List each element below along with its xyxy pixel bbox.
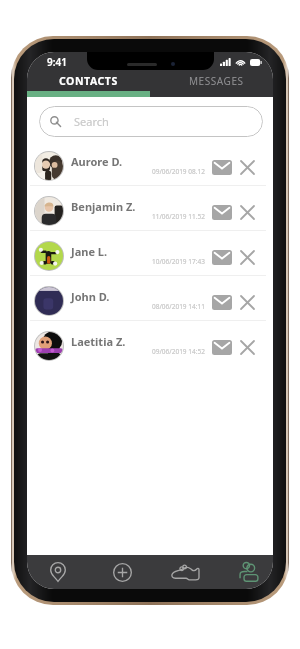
button[interactable]: CONTACTS: [27, 72, 150, 97]
button[interactable]: Activity: [167, 555, 203, 589]
staticText: 10/06/2019 17:43: [152, 257, 205, 266]
button[interactable]: Location: [40, 555, 76, 589]
staticText: Search: [74, 114, 109, 129]
button[interactable]: Laetitia Z.: [27, 321, 273, 366]
button[interactable]: Search: [39, 106, 263, 137]
button[interactable]: Benjamin Z.: [27, 186, 273, 231]
staticText: John D.: [71, 289, 110, 304]
button[interactable]: Delete: [239, 339, 255, 355]
staticText: Benjamin Z.: [71, 199, 136, 214]
button[interactable]: Aurore D.: [27, 141, 273, 186]
button[interactable]: Message: [211, 158, 233, 176]
staticText: Laetitia Z.: [71, 334, 126, 349]
button[interactable]: John D.: [27, 276, 273, 321]
staticText: CONTACTS: [59, 74, 118, 88]
staticText: 08/06/2019 14:11: [152, 302, 205, 311]
staticText: Aurore D.: [71, 154, 123, 169]
staticText: 11/06/2019 11.52: [152, 212, 205, 221]
staticText: 09/06/2019 08.12: [152, 167, 205, 176]
staticText: 9:41: [47, 55, 67, 69]
button[interactable]: Message: [211, 248, 233, 266]
button[interactable]: Message: [211, 338, 233, 356]
button[interactable]: Contacts: [231, 555, 267, 589]
button[interactable]: Jane L.: [27, 231, 273, 276]
button[interactable]: Delete: [239, 249, 255, 265]
button[interactable]: Add: [104, 555, 140, 589]
staticText: MESSAGES: [189, 74, 244, 88]
button[interactable]: Delete: [239, 294, 255, 310]
staticText: Jane L.: [71, 244, 108, 259]
button[interactable]: Message: [211, 293, 233, 311]
button[interactable]: Delete: [239, 204, 255, 220]
button[interactable]: Delete: [239, 159, 255, 175]
button[interactable]: Message: [211, 203, 233, 221]
button[interactable]: MESSAGES: [150, 72, 273, 97]
staticText: 09/06/2019 14:52: [152, 347, 205, 356]
